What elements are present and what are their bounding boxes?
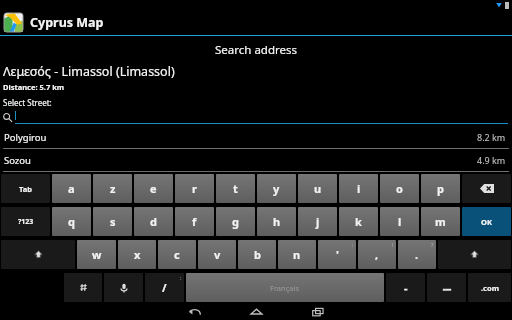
- button[interactable]: o: [380, 174, 419, 203]
- staticText: 4.9 km: [477, 154, 506, 166]
- button[interactable]: .com: [468, 273, 511, 302]
- staticText: Search address: [0, 42, 512, 58]
- staticText: 8.2 km: [477, 131, 506, 143]
- staticText: ?123: [18, 217, 34, 227]
- button[interactable]: Back: [174, 304, 214, 320]
- button[interactable]: ?123: [1, 207, 50, 236]
- button[interactable]: b: [238, 240, 276, 269]
- staticText: b: [254, 247, 261, 262]
- button[interactable]: f: [175, 207, 214, 236]
- button[interactable]: a: [52, 174, 91, 203]
- button[interactable]: Français: [186, 273, 384, 302]
- button[interactable]: Home: [236, 304, 276, 320]
- button[interactable]: Sozou: [0, 149, 512, 172]
- staticText: p: [437, 181, 444, 196]
- button[interactable]: r: [175, 174, 214, 203]
- staticText: Distance: 5.7 km: [3, 82, 65, 92]
- staticText: Français: [270, 283, 300, 293]
- button[interactable]: mic: [104, 273, 143, 302]
- staticText: ,: [375, 247, 379, 262]
- staticText: !: [392, 241, 394, 248]
- button[interactable]: p: [421, 174, 460, 203]
- button[interactable]: i: [339, 174, 378, 203]
- button[interactable]: l: [380, 207, 419, 236]
- staticText: :: [352, 241, 354, 248]
- button[interactable]: e: [134, 174, 173, 203]
- staticText: ': [336, 247, 339, 262]
- button[interactable]: k: [339, 207, 378, 236]
- button[interactable]: q: [52, 207, 91, 236]
- staticText: u: [314, 181, 322, 196]
- staticText: :: [180, 274, 182, 281]
- staticText: Tab: [19, 184, 32, 194]
- button[interactable]: z: [93, 174, 132, 203]
- staticText: ?: [431, 241, 434, 248]
- staticText: l: [398, 214, 402, 229]
- staticText: t: [233, 181, 238, 196]
- button[interactable]: ': [318, 240, 356, 269]
- button[interactable]: j: [298, 207, 337, 236]
- staticText: s: [110, 214, 116, 229]
- staticText: q: [68, 214, 75, 229]
- staticText: j: [316, 214, 320, 229]
- staticText: .com: [481, 283, 499, 293]
- staticText: x: [134, 247, 141, 262]
- staticText: y: [273, 181, 280, 196]
- staticText: w: [92, 247, 102, 262]
- staticText: v: [214, 247, 221, 262]
- staticText: OK: [481, 217, 492, 227]
- staticText: m: [435, 214, 446, 229]
- button[interactable]: .: [398, 240, 436, 269]
- button[interactable]: h: [257, 207, 296, 236]
- staticText: Select Street:: [3, 97, 52, 108]
- staticText: i: [357, 181, 361, 196]
- button[interactable]: u: [298, 174, 337, 203]
- button[interactable]: -: [386, 273, 425, 302]
- staticText: a: [68, 181, 75, 196]
- button[interactable]: Polygirou: [0, 126, 512, 149]
- staticText: z: [110, 181, 116, 196]
- staticText: f: [192, 214, 197, 229]
- button[interactable]: c: [158, 240, 196, 269]
- button[interactable]: t: [216, 174, 255, 203]
- staticText: Cyprus Map: [30, 14, 104, 31]
- button[interactable]: bksp: [462, 174, 511, 203]
- staticText: Λεμεσός - Limassol (Limassol): [3, 63, 175, 80]
- button[interactable]: s: [93, 207, 132, 236]
- staticText: h: [273, 214, 281, 229]
- staticText: /: [162, 280, 167, 295]
- button[interactable]: grid: [64, 273, 102, 302]
- button[interactable]: Tab: [1, 174, 50, 203]
- button[interactable]: v: [198, 240, 236, 269]
- staticText: g: [232, 214, 239, 229]
- button[interactable]: d: [134, 207, 173, 236]
- button[interactable]: g: [216, 207, 255, 236]
- button[interactable]: Recent apps: [298, 304, 338, 320]
- staticText: c: [174, 247, 180, 262]
- button[interactable]: under: [427, 273, 466, 302]
- staticText: o: [396, 181, 403, 196]
- staticText: n: [293, 247, 301, 262]
- button[interactable]: ,: [358, 240, 396, 269]
- button[interactable]: y: [257, 174, 296, 203]
- staticText: Sozou: [4, 154, 31, 167]
- staticText: .: [415, 247, 419, 262]
- button[interactable]: x: [118, 240, 156, 269]
- button[interactable]: shift: [1, 240, 75, 269]
- staticText: e: [150, 181, 157, 196]
- button[interactable]: shift: [438, 240, 511, 269]
- button[interactable]: m: [421, 207, 460, 236]
- staticText: k: [355, 214, 362, 229]
- staticText: -: [404, 280, 408, 295]
- staticText: r: [192, 181, 197, 196]
- button[interactable]: OK: [462, 207, 511, 236]
- button[interactable]: n: [278, 240, 316, 269]
- button[interactable]: /: [145, 273, 184, 302]
- staticText: d: [150, 214, 157, 229]
- button[interactable]: w: [77, 240, 116, 269]
- staticText: Polygirou: [4, 131, 47, 144]
